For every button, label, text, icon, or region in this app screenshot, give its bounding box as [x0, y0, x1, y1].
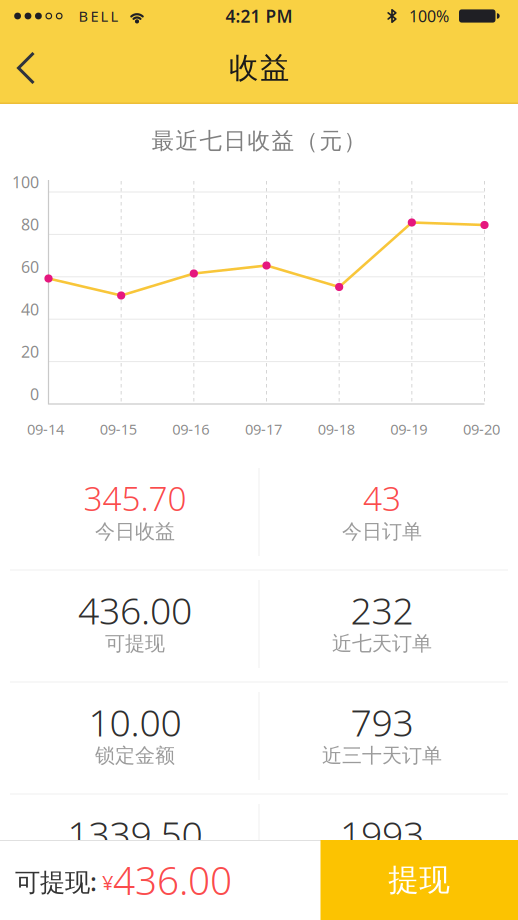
- staticText: 累计订单: [342, 855, 422, 880]
- staticText: 1993: [340, 809, 424, 859]
- staticText: 60: [21, 256, 39, 277]
- staticText: 4:21 PM: [225, 4, 292, 27]
- staticText: 09-18: [318, 419, 355, 439]
- staticText: 436.00: [78, 585, 192, 635]
- staticText: 锁定金额: [95, 743, 175, 768]
- staticText: 收益: [229, 50, 289, 86]
- staticText: ¥: [97, 869, 113, 896]
- button[interactable]: 提现: [320, 840, 518, 920]
- staticText: 09-15: [100, 419, 137, 439]
- staticText: 可提现: [105, 631, 165, 656]
- staticText: 43: [363, 476, 401, 520]
- staticText: 09-17: [245, 419, 282, 439]
- staticText: 今日收益: [95, 519, 175, 544]
- staticText: 436.00: [113, 854, 232, 906]
- staticText: 100%: [409, 5, 449, 27]
- staticText: 近三十天订单: [322, 743, 442, 768]
- staticText: 20: [21, 341, 39, 362]
- staticText: 近七天订单: [332, 631, 432, 656]
- staticText: 80: [21, 214, 39, 235]
- staticText: 提现: [388, 861, 450, 899]
- staticText: 09-19: [390, 419, 427, 439]
- staticText: 793: [350, 697, 413, 747]
- staticText: 100: [12, 171, 39, 193]
- staticText: 1339.50: [67, 809, 202, 859]
- staticText: 09-20: [463, 419, 500, 439]
- staticText: 10.00: [88, 697, 181, 747]
- staticText: 345.70: [83, 476, 186, 520]
- staticText: 09-14: [27, 419, 64, 439]
- button[interactable]: [6, 48, 50, 88]
- staticText: 09-16: [172, 419, 209, 439]
- staticText: 最近七日收益（元）: [151, 127, 366, 155]
- staticText: 累计收益: [95, 855, 175, 880]
- staticText: 232: [350, 585, 413, 635]
- staticText: 40: [21, 299, 39, 320]
- staticText: 可提现:: [15, 865, 97, 898]
- staticText: BELL: [78, 6, 118, 26]
- staticText: 0: [30, 383, 39, 405]
- staticText: 今日订单: [342, 519, 422, 544]
